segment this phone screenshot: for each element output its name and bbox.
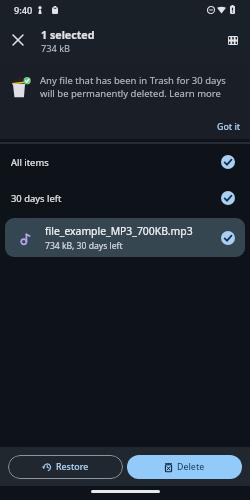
staticText: Delete (177, 461, 205, 473)
staticText: Restore (56, 461, 89, 473)
button[interactable]: Switch to grid view (222, 29, 244, 51)
button[interactable]: Close selection (7, 29, 29, 51)
staticText: Got it (217, 121, 241, 133)
staticText: 1 selected (41, 28, 95, 43)
button[interactable]: file_example_MP3_700KB.mp3 (5, 218, 245, 257)
button[interactable]: 30 days left (0, 180, 250, 216)
staticText: 30 days left (11, 192, 62, 205)
staticText: 9:40 (14, 4, 33, 17)
staticText: file_example_MP3_700KB.mp3 (45, 224, 193, 238)
button[interactable]: Delete (127, 455, 242, 479)
staticText: 734 kB, 30 days left (45, 240, 123, 252)
button[interactable]: Got it (211, 119, 247, 135)
staticText: Any file that has been in Trash for 30 d… (40, 74, 230, 100)
staticText: All items (11, 156, 49, 169)
button[interactable]: All items (0, 144, 250, 180)
button[interactable]: Restore (8, 455, 123, 479)
staticText: 734 kB (41, 42, 71, 55)
